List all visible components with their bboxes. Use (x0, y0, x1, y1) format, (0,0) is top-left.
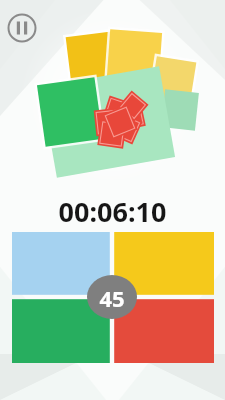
button[interactable]: Yellow tile (114, 232, 214, 295)
button[interactable]: Pause (4, 10, 40, 46)
button[interactable]: Red tile (114, 299, 214, 363)
staticText: 45 (87, 283, 137, 311)
button[interactable]: Green tile (12, 299, 110, 363)
button[interactable]: Blue tile (12, 232, 110, 295)
staticText: 00:06:10 (0, 193, 225, 227)
